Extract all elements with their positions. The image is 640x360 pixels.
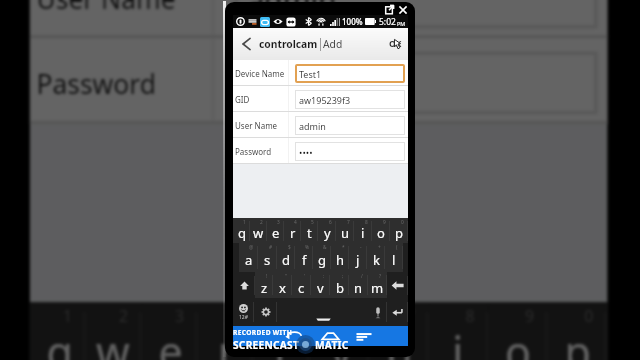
button[interactable]: 4 [284, 218, 301, 243]
button[interactable]: 7 [336, 218, 354, 243]
button[interactable]: 5 [254, 302, 310, 360]
staticText: @ [249, 244, 254, 251]
staticText: u [341, 224, 350, 242]
button[interactable]: ' [292, 272, 311, 298]
staticText: e [159, 322, 185, 360]
button[interactable]: Backspace [387, 272, 408, 298]
button[interactable]: 6 [318, 218, 336, 243]
button[interactable]: Emoji [233, 298, 254, 326]
staticText: p [395, 224, 403, 242]
button[interactable]: 0 [548, 302, 607, 360]
staticText: 6 [329, 219, 332, 226]
staticText: e [272, 224, 280, 242]
button[interactable]: " [273, 272, 292, 298]
button[interactable]: Home [313, 326, 347, 346]
staticText: j [356, 251, 360, 269]
button[interactable]: * [331, 243, 349, 272]
button[interactable]: User Name [233, 112, 408, 138]
staticText: ? [379, 273, 382, 280]
button[interactable]: 3 [142, 302, 198, 360]
button[interactable]: 7 [370, 302, 429, 360]
button[interactable]: / [349, 272, 368, 298]
staticText: aw195239f3 [299, 94, 351, 106]
button[interactable]: 9 [489, 302, 548, 360]
staticText: a [245, 251, 253, 269]
staticText: v [317, 279, 324, 297]
staticText: 0 [584, 306, 594, 329]
staticText: 3 [277, 219, 280, 226]
staticText: 4 [231, 306, 241, 329]
button[interactable]: & [313, 243, 331, 272]
button[interactable]: Enter [387, 298, 408, 326]
button[interactable]: 5 [301, 218, 318, 243]
staticText: GID [235, 94, 250, 105]
staticText: * [342, 244, 345, 251]
button[interactable]: ( [385, 243, 403, 272]
button[interactable]: Close [397, 3, 408, 16]
button[interactable]: 1 [30, 302, 86, 360]
button[interactable]: # [258, 243, 277, 272]
staticText: $ [288, 244, 291, 251]
staticText: SCREENCAST [233, 338, 300, 352]
staticText: c [298, 279, 305, 297]
button[interactable]: Voice input [369, 298, 387, 326]
button[interactable]: 2 [250, 218, 267, 243]
button[interactable]: ! [255, 272, 273, 298]
button[interactable]: ; [330, 272, 349, 298]
button[interactable]: 1 [233, 218, 250, 243]
staticText: 7 [347, 219, 350, 226]
staticText: r [218, 322, 238, 360]
button[interactable]: 2 [86, 302, 142, 360]
button[interactable]: Open in new window [383, 3, 395, 16]
staticText: ! [266, 273, 268, 280]
button[interactable]: GID [233, 86, 408, 112]
button[interactable]: $ [277, 243, 295, 272]
button[interactable]: 6 [310, 302, 370, 360]
button[interactable]: Recent apps [347, 326, 381, 346]
button[interactable]: Back [233, 28, 259, 60]
button[interactable]: Password [30, 38, 607, 124]
staticText: Add [323, 37, 343, 51]
staticText: 8 [365, 219, 368, 226]
button[interactable]: 3 [267, 218, 284, 243]
staticText: •••• [248, 65, 294, 104]
button[interactable]: Back [276, 326, 310, 346]
staticText: m [371, 279, 384, 297]
button[interactable]: 9 [372, 218, 390, 243]
staticText: 5:02 [379, 16, 396, 28]
staticText: " [285, 273, 287, 280]
button[interactable]: User Name [30, 0, 607, 38]
staticText: l [392, 251, 396, 269]
staticText: z [261, 279, 268, 297]
button[interactable]: - [349, 243, 367, 272]
button[interactable]: 4 [198, 302, 254, 360]
button[interactable]: + [367, 243, 385, 272]
button[interactable]: OK [382, 28, 408, 60]
button[interactable]: Password [233, 138, 408, 164]
staticText: 5 [287, 306, 297, 329]
button[interactable]: Space [277, 298, 369, 326]
button[interactable]: % [295, 243, 313, 272]
button[interactable]: Device Name [233, 60, 408, 86]
staticText: % [305, 244, 309, 251]
staticText: •••• [299, 146, 313, 158]
button[interactable]: 8 [354, 218, 372, 243]
button[interactable]: 8 [429, 302, 489, 360]
staticText: i [361, 224, 365, 242]
staticText: MATIC [315, 338, 349, 352]
button[interactable]: Settings [254, 298, 277, 326]
button[interactable]: 0 [390, 218, 408, 243]
staticText: 7 [406, 306, 416, 329]
staticText: w [96, 322, 132, 360]
staticText: Password [235, 146, 272, 157]
staticText: t [274, 322, 291, 360]
button[interactable]: ? [368, 272, 387, 298]
staticText: 6 [347, 306, 357, 329]
button[interactable]: : [311, 272, 330, 298]
staticText: 9 [525, 306, 535, 329]
button[interactable]: Shift [233, 272, 255, 298]
staticText: 4 [294, 219, 297, 226]
staticText: i [452, 322, 465, 360]
button[interactable]: @ [239, 243, 258, 272]
